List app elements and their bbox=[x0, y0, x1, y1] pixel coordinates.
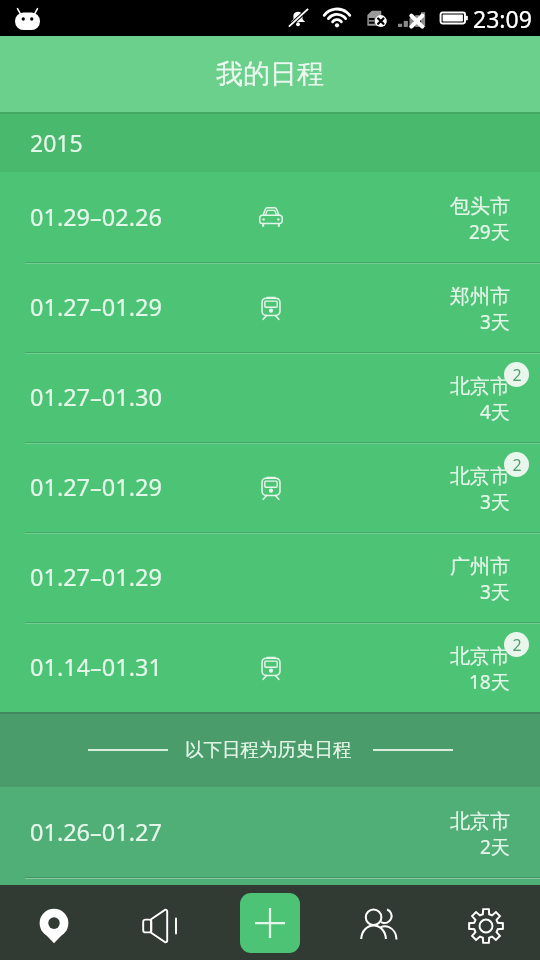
staticText: 3天 bbox=[480, 309, 510, 335]
button[interactable]: Friends bbox=[324, 885, 432, 960]
button[interactable]: 01.14–01.31 bbox=[0, 622, 540, 712]
button[interactable]: 01.29–02.26 bbox=[0, 172, 540, 262]
staticText: 01.27–01.30 bbox=[30, 381, 162, 413]
staticText: 3天 bbox=[480, 579, 510, 605]
staticText: 18天 bbox=[469, 669, 510, 695]
staticText: 4天 bbox=[480, 399, 510, 425]
button[interactable]: 2015 bbox=[0, 112, 540, 172]
button[interactable]: 01.27–01.29 bbox=[0, 532, 540, 622]
button[interactable]: Notifications bbox=[108, 885, 216, 960]
staticText: 北京市 bbox=[450, 374, 510, 399]
staticText: 我的日程 bbox=[216, 57, 324, 91]
button[interactable]: Location bbox=[0, 885, 108, 960]
staticText: 01.27–01.29 bbox=[30, 471, 162, 503]
staticText: 01.27–01.29 bbox=[30, 291, 162, 323]
staticText: 3天 bbox=[480, 489, 510, 515]
staticText: 23:09 bbox=[473, 3, 532, 34]
staticText: 包头市 bbox=[450, 194, 510, 219]
staticText: 01.14–01.31 bbox=[30, 651, 162, 683]
staticText: 29天 bbox=[469, 219, 510, 245]
staticText: 01.26–01.27 bbox=[30, 816, 162, 848]
staticText: 2 bbox=[512, 454, 522, 476]
staticText: 2015 bbox=[30, 127, 83, 158]
button[interactable]: 01.27–01.29 bbox=[0, 262, 540, 352]
staticText: 2 bbox=[512, 634, 522, 656]
staticText: 郑州市 bbox=[450, 284, 510, 309]
staticText: 广州市 bbox=[450, 554, 510, 579]
staticText: 01.29–02.26 bbox=[30, 201, 162, 233]
staticText: 2天 bbox=[480, 834, 510, 860]
button[interactable]: 01.26–01.27 bbox=[0, 787, 540, 877]
staticText: 北京市 bbox=[450, 464, 510, 489]
staticText: 北京市 bbox=[450, 809, 510, 834]
staticText: 北京市 bbox=[450, 644, 510, 669]
button[interactable]: 01.27–01.30 bbox=[0, 352, 540, 442]
staticText: 以下日程为历史日程 bbox=[185, 738, 352, 761]
button[interactable]: 01.27–01.29 bbox=[0, 442, 540, 532]
staticText: 2 bbox=[512, 364, 522, 386]
button[interactable]: Add schedule bbox=[216, 885, 324, 960]
staticText: 01.27–01.29 bbox=[30, 561, 162, 593]
button[interactable]: Settings bbox=[432, 885, 540, 960]
